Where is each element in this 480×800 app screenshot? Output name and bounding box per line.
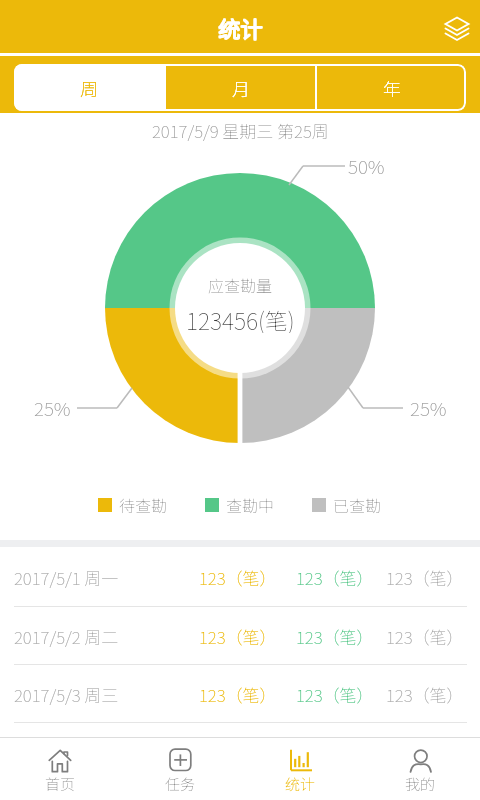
staticText: 我的 bbox=[405, 773, 436, 795]
staticText: 月 bbox=[232, 75, 250, 101]
staticText: 年 bbox=[383, 75, 401, 101]
staticText: 50% bbox=[348, 152, 385, 180]
button[interactable]: 2017/5/1 周一 bbox=[0, 547, 480, 607]
staticText: 123（笔） bbox=[199, 624, 277, 649]
staticText: 周 bbox=[80, 75, 98, 101]
staticText: 2017/5/2 周二 bbox=[14, 624, 119, 649]
button[interactable] bbox=[444, 16, 470, 43]
button[interactable]: 年 bbox=[317, 64, 466, 111]
button[interactable]: 2017/5/3 周三 bbox=[0, 665, 480, 723]
button[interactable]: 2017/5/2 周二 bbox=[0, 607, 480, 665]
staticText: 首页 bbox=[45, 773, 76, 795]
staticText: 123（笔） bbox=[296, 682, 374, 707]
button[interactable]: 任务 bbox=[120, 738, 240, 800]
staticText: 2017/5/1 周一 bbox=[14, 565, 119, 590]
button[interactable]: 我的 bbox=[360, 738, 480, 800]
staticText: 25% bbox=[34, 394, 71, 422]
staticText: 统计 bbox=[219, 11, 264, 43]
staticText: 统计 bbox=[219, 12, 264, 44]
staticText: 统计 bbox=[218, 11, 263, 43]
staticText: 统计 bbox=[218, 12, 263, 44]
button[interactable]: 统计 bbox=[240, 738, 360, 800]
staticText: 123（笔） bbox=[386, 682, 464, 707]
staticText: 2017/5/9 星期三 第25周 bbox=[152, 118, 329, 142]
staticText: 25% bbox=[410, 394, 447, 422]
staticText: 年 bbox=[383, 75, 401, 101]
staticText: 统计 bbox=[285, 773, 316, 795]
staticText: 123（笔） bbox=[199, 565, 277, 590]
staticText: 123456(笔) bbox=[186, 303, 295, 333]
staticText: 已查勘 bbox=[333, 493, 382, 516]
staticText: 2017/5/3 周三 bbox=[14, 682, 119, 707]
staticText: 任务 bbox=[165, 773, 196, 795]
staticText: 待查勘 bbox=[119, 493, 168, 516]
staticText: 123（笔） bbox=[386, 565, 464, 590]
staticText: 123（笔） bbox=[296, 565, 374, 590]
staticText: 应查勘量 bbox=[208, 273, 273, 296]
button[interactable]: 月 bbox=[166, 64, 315, 111]
button[interactable]: 首页 bbox=[0, 738, 120, 800]
staticText: 123（笔） bbox=[199, 682, 277, 707]
staticText: 查勘中 bbox=[226, 493, 275, 516]
staticText: 周 bbox=[80, 75, 98, 101]
staticText: 123（笔） bbox=[386, 624, 464, 649]
button[interactable]: 周 bbox=[14, 64, 164, 111]
staticText: 月 bbox=[232, 75, 250, 101]
staticText: 123（笔） bbox=[296, 624, 374, 649]
